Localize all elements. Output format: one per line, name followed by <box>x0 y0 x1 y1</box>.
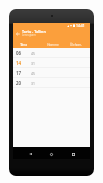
staticText: 45 <box>31 51 35 56</box>
button[interactable]: Ülehom. <box>65 40 87 48</box>
staticText: 06 <box>16 50 22 56</box>
button[interactable]: 20 <box>13 78 90 88</box>
staticText: 20 <box>16 80 22 86</box>
staticText: Ülehom. <box>70 43 82 47</box>
staticText: 31 <box>31 81 35 86</box>
staticText: Lennujaam <box>22 33 36 37</box>
staticText: 31 <box>31 61 35 66</box>
staticText: 45 <box>31 71 35 76</box>
button[interactable]: 14 <box>13 58 90 68</box>
button[interactable]: Back <box>25 147 35 159</box>
staticText: Täna <box>20 43 27 47</box>
button[interactable]: Homme <box>42 40 64 48</box>
staticText: 14:41 <box>76 23 85 28</box>
staticText: Homme <box>47 43 59 47</box>
staticText: 14 <box>16 60 22 66</box>
button[interactable]: Home <box>46 147 56 159</box>
button[interactable]: Täna <box>13 40 34 48</box>
button[interactable]: Recent apps <box>68 147 78 159</box>
button[interactable]: Navigate up <box>13 28 22 40</box>
button[interactable]: 06 <box>13 48 90 58</box>
staticText: 17 <box>16 70 22 76</box>
button[interactable]: 17 <box>13 68 90 78</box>
staticText: Tartu - Tallinn <box>22 29 46 34</box>
